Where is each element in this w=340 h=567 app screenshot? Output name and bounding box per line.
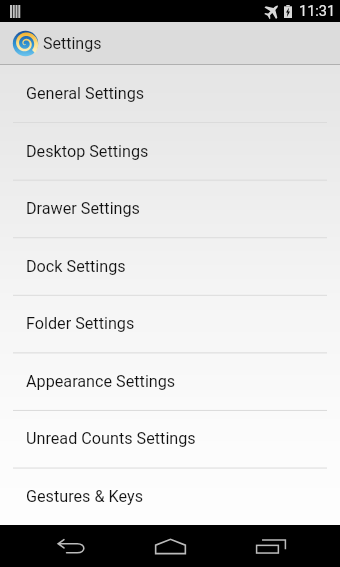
staticText: Appearance Settings: [26, 372, 176, 391]
staticText: 11:31: [299, 3, 336, 20]
staticText: Settings: [43, 34, 102, 53]
button[interactable]: General Settings: [0, 65, 340, 123]
button[interactable]: Gestures & Keys: [0, 468, 340, 526]
button[interactable]: Folder Settings: [0, 295, 340, 353]
button[interactable]: Settings: [0, 22, 340, 64]
button[interactable]: Drawer Settings: [0, 180, 340, 238]
staticText: Desktop Settings: [26, 142, 149, 161]
button[interactable]: Back: [47, 525, 95, 567]
staticText: General Settings: [26, 84, 145, 103]
button[interactable]: Unread Counts Settings: [0, 410, 340, 468]
button[interactable]: Desktop Settings: [0, 123, 340, 181]
staticText: Dock Settings: [26, 257, 126, 276]
button[interactable]: Home: [146, 525, 194, 567]
staticText: Gestures & Keys: [26, 487, 144, 506]
staticText: Unread Counts Settings: [26, 429, 196, 448]
button[interactable]: Appearance Settings: [0, 353, 340, 411]
staticText: Folder Settings: [26, 314, 135, 333]
button[interactable]: Dock Settings: [0, 238, 340, 296]
button[interactable]: Recent apps: [247, 525, 295, 567]
staticText: Drawer Settings: [26, 199, 140, 218]
